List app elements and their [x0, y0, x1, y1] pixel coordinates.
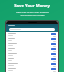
button[interactable]: [6, 67, 58, 72]
button[interactable]: [6, 32, 58, 37]
button[interactable]: [6, 47, 58, 52]
button[interactable]: [6, 62, 58, 67]
staticText: Save Your Money: [14, 3, 50, 9]
button[interactable]: [6, 37, 58, 42]
button[interactable]: Search: [9, 28, 55, 31]
staticText: Keep track of your daily expenses and co…: [16, 11, 49, 17]
button[interactable]: [6, 57, 58, 62]
button[interactable]: [6, 42, 58, 47]
button[interactable]: [6, 52, 58, 57]
